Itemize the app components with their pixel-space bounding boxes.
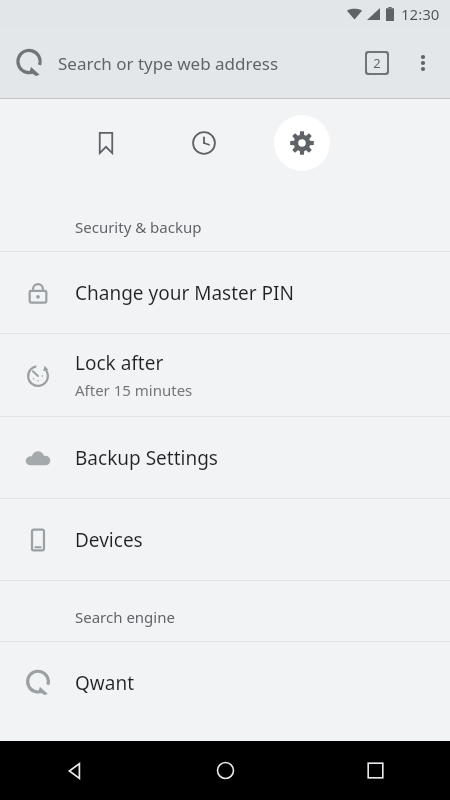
button[interactable]: Search or type web address [58,28,354,98]
button[interactable]: Recent apps [300,741,450,800]
button[interactable]: History [176,115,232,171]
staticText: Devices [75,527,143,553]
staticText: Search engine [75,607,175,627]
button[interactable]: Back [0,741,150,800]
staticText: After 15 minutes [75,380,193,400]
other: Qwant [0,28,58,98]
button[interactable]: Bookmarks [78,115,134,171]
staticText: Security & backup [75,217,202,237]
staticText: Change your Master PIN [75,280,294,306]
staticText: Qwant [75,670,135,696]
button[interactable]: More options [400,28,446,98]
staticText: Lock after [75,350,164,376]
button[interactable]: Home [150,741,300,800]
staticText: Backup Settings [75,445,218,471]
staticText: 2 [373,54,381,72]
button[interactable]: Devices [0,499,450,580]
button[interactable]: Settings [274,115,330,171]
button[interactable]: Backup Settings [0,417,450,498]
button[interactable]: Tabs: 2 [354,28,400,98]
staticText: Search or type web address [58,52,279,75]
staticText: 12:30 [401,4,440,24]
button[interactable]: Change your Master PIN [0,252,450,333]
button[interactable]: Lock after [0,334,450,416]
button[interactable]: Qwant [0,642,450,723]
